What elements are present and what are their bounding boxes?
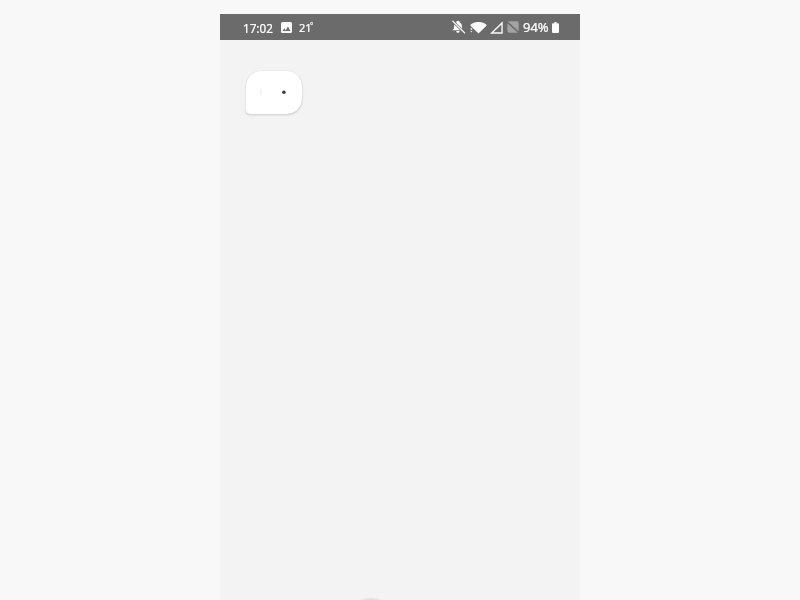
staticText: 21 bbox=[299, 20, 312, 35]
staticText: 17:02 bbox=[243, 20, 273, 36]
staticText: 94% bbox=[523, 18, 549, 36]
button[interactable]: Message bbox=[246, 71, 302, 114]
staticText: ° bbox=[310, 20, 314, 31]
button[interactable]: Compose bbox=[345, 597, 397, 600]
